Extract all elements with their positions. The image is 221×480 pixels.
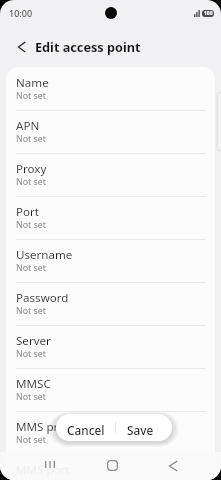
staticText: Not set [16, 133, 46, 145]
staticText: Password [16, 290, 69, 306]
staticText: Server [16, 333, 51, 349]
staticText: Not set [16, 262, 46, 274]
button[interactable]: Back [158, 452, 188, 480]
button[interactable]: Server [6, 326, 215, 368]
staticText: Save [127, 422, 154, 438]
button[interactable]: Navigate up [5, 30, 38, 63]
staticText: 100 [204, 10, 213, 17]
staticText: Not set [16, 391, 46, 403]
staticText: Not set [16, 176, 46, 188]
staticText: Name [16, 75, 49, 91]
button[interactable]: Home [97, 452, 127, 480]
button[interactable]: MMSC [6, 369, 215, 411]
button[interactable]: Recent apps [35, 452, 65, 480]
button[interactable]: APN [6, 111, 215, 153]
button[interactable]: MMS proxy [6, 412, 215, 454]
staticText: 10:00 [9, 7, 33, 19]
staticText: Not set [16, 305, 46, 317]
staticText: Not set [16, 90, 46, 102]
button[interactable]: Save [115, 414, 172, 441]
staticText: MMS proxy [16, 419, 77, 435]
button[interactable]: Password [6, 283, 215, 325]
staticText: Not set [16, 348, 46, 360]
button[interactable]: Proxy [6, 154, 215, 196]
staticText: Edit access point [35, 38, 141, 55]
button[interactable]: MMS port [6, 455, 215, 480]
staticText: Not set [16, 434, 46, 446]
button[interactable]: Username [6, 240, 215, 282]
staticText: Proxy [16, 161, 47, 177]
staticText: MMS port [16, 462, 70, 478]
button[interactable]: Cancel [56, 414, 115, 441]
staticText: Cancel [67, 422, 105, 438]
staticText: MMSC [16, 376, 51, 392]
staticText: Username [16, 247, 73, 263]
staticText: Not set [16, 219, 46, 231]
button[interactable]: Port [6, 197, 215, 239]
staticText: Port [16, 204, 40, 220]
staticText: APN [16, 118, 40, 134]
button[interactable]: Name [6, 67, 215, 110]
